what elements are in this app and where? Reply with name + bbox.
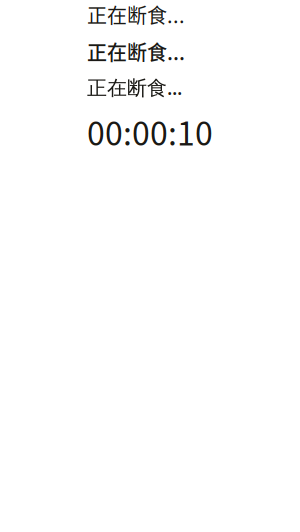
staticText: 00:00:10 [87,108,213,155]
staticText: 正在断食... [87,37,185,66]
staticText: 正在断食... [87,74,182,100]
staticText: 正在断食... [87,0,185,29]
